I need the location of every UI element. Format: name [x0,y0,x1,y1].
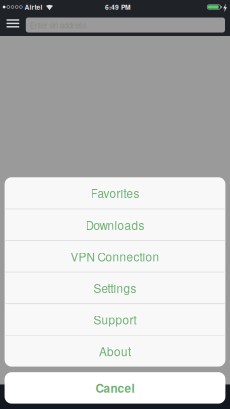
staticText: Support [93,311,136,328]
staticText: Airtel [24,2,42,12]
staticText: Cancel [95,379,134,396]
button[interactable]: Downloads [5,209,225,240]
button[interactable]: Menu [0,14,26,36]
button[interactable]: Settings [5,272,225,303]
staticText: 6:49 PM [105,2,131,12]
staticText: Downloads [85,216,144,233]
button[interactable]: VPN Connection [5,240,225,272]
staticText: VPN Connection [70,248,159,265]
button[interactable]: About [5,335,225,367]
button[interactable]: Favorites [5,177,225,209]
staticText: About [99,343,131,359]
button[interactable]: Cancel [5,372,225,404]
staticText: Enter an address [30,19,87,31]
button[interactable]: Enter an address [26,17,225,32]
button[interactable]: Support [5,303,225,335]
staticText: Settings [93,280,136,296]
staticText: Favorites [90,185,139,201]
